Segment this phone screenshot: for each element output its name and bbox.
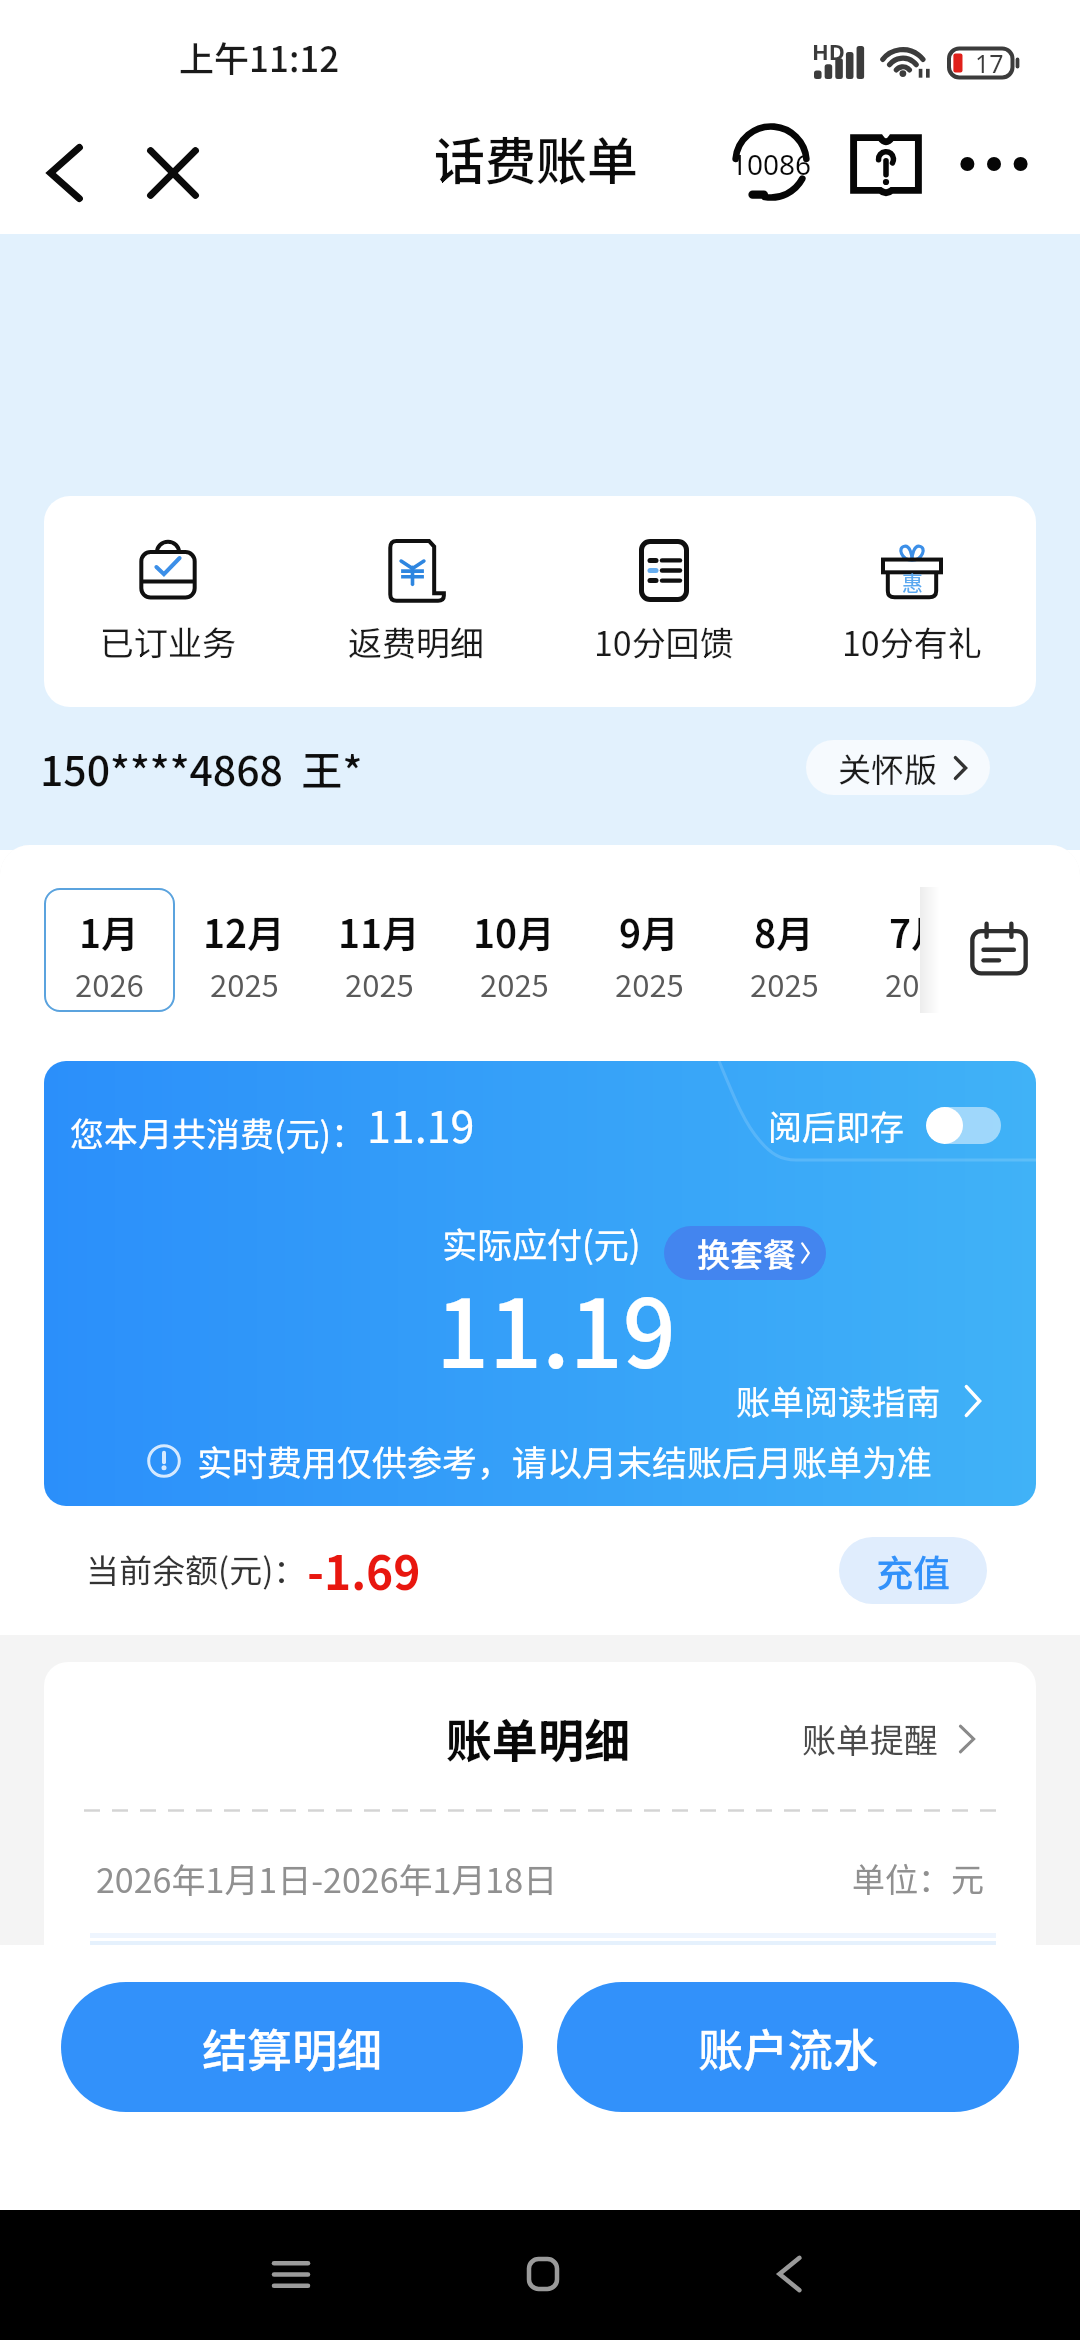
button[interactable]: 10分回馈 <box>540 496 788 707</box>
staticText: 11月 <box>338 904 421 959</box>
button[interactable]: Home <box>503 2234 583 2314</box>
staticText: 返费明细 <box>348 617 484 666</box>
staticText: 已订业务 <box>100 617 236 666</box>
staticText: 当前余额(元)： <box>86 1545 307 1593</box>
button[interactable]: 1月 <box>42 893 176 1017</box>
staticText: 惠 <box>902 567 923 597</box>
staticText: 账单阅读指南 <box>736 1376 940 1425</box>
staticText: 2025 <box>480 961 549 1006</box>
staticText: 10月 <box>473 904 556 959</box>
button[interactable]: 返费明细 <box>292 496 540 707</box>
button[interactable]: 账单提醒 <box>802 1714 978 1763</box>
button[interactable]: 已订业务 <box>44 496 292 707</box>
button[interactable]: Help <box>834 112 938 216</box>
button[interactable]: Recent apps <box>251 2234 331 2314</box>
staticText: 1月 <box>79 904 140 959</box>
staticText: HD <box>812 36 845 66</box>
button[interactable]: 11月 <box>312 893 446 1017</box>
button[interactable]: 结算明细 <box>61 1982 523 2112</box>
staticText: 10086 <box>731 145 812 183</box>
staticText: 上午11:12 <box>179 31 340 82</box>
staticText: 10分有礼 <box>842 617 982 666</box>
staticText: 2025 <box>885 961 920 1006</box>
button[interactable]: 8月 <box>717 893 851 1017</box>
staticText: 话费账单 <box>434 121 639 195</box>
button[interactable]: Close <box>128 128 218 218</box>
staticText: -1.69 <box>307 1537 421 1604</box>
button[interactable]: 关怀版 <box>806 740 990 795</box>
button[interactable]: 9月 <box>582 893 716 1017</box>
button[interactable]: Back <box>20 128 110 218</box>
staticText: 2025 <box>345 961 414 1006</box>
staticText: 150****4868 王* <box>40 738 363 797</box>
button[interactable]: 账户流水 <box>557 1982 1019 2112</box>
staticText: 账单明细 <box>446 1705 630 1772</box>
staticText: 11.19 <box>436 1260 676 1395</box>
button[interactable]: 7月 <box>852 893 920 1017</box>
button[interactable]: Back <box>749 2234 829 2314</box>
staticText: 11.19 <box>367 1093 475 1155</box>
staticText: 充值 <box>876 1544 950 1598</box>
button[interactable]: Select month <box>949 901 1049 1001</box>
staticText: 阅后即存 <box>768 1101 904 1150</box>
staticText: 2025 <box>210 961 279 1006</box>
staticText: 结算明细 <box>202 2015 383 2080</box>
staticText: 12月 <box>203 904 286 959</box>
staticText: 换套餐 <box>697 1229 796 1277</box>
button[interactable]: 阅后即存 <box>768 1101 1001 1150</box>
button[interactable]: 账单阅读指南 <box>736 1376 984 1425</box>
button[interactable]: 惠 <box>788 496 1036 707</box>
staticText: 实时费用仅供参考，请以月末结账后月账单为准 <box>197 1435 933 1486</box>
button[interactable]: 换套餐 <box>664 1226 826 1280</box>
staticText: 账户流水 <box>698 2015 879 2080</box>
button[interactable]: 充值 <box>839 1537 987 1604</box>
staticText: 17 <box>975 46 1004 78</box>
button[interactable]: More options <box>942 112 1046 216</box>
staticText: 10分回馈 <box>594 617 734 666</box>
staticText: 您本月共消费(元)： <box>70 1108 365 1157</box>
button[interactable]: 10月 <box>447 893 581 1017</box>
staticText: 关怀版 <box>838 744 937 792</box>
button[interactable]: 12月 <box>177 893 311 1017</box>
staticText: 7月 <box>889 904 920 959</box>
staticText: 2025 <box>615 961 684 1006</box>
staticText: 实际应付(元) <box>442 1217 641 1268</box>
staticText: 账单提醒 <box>802 1714 938 1763</box>
button[interactable]: Call 10086 <box>719 110 823 214</box>
staticText: 9月 <box>619 904 680 959</box>
staticText: 2025 <box>750 961 819 1006</box>
staticText: 2026 <box>75 961 144 1006</box>
staticText: 单位：元 <box>852 1854 984 1902</box>
staticText: 8月 <box>754 904 815 959</box>
staticText: 2026年1月1日-2026年1月18日 <box>96 1854 558 1903</box>
